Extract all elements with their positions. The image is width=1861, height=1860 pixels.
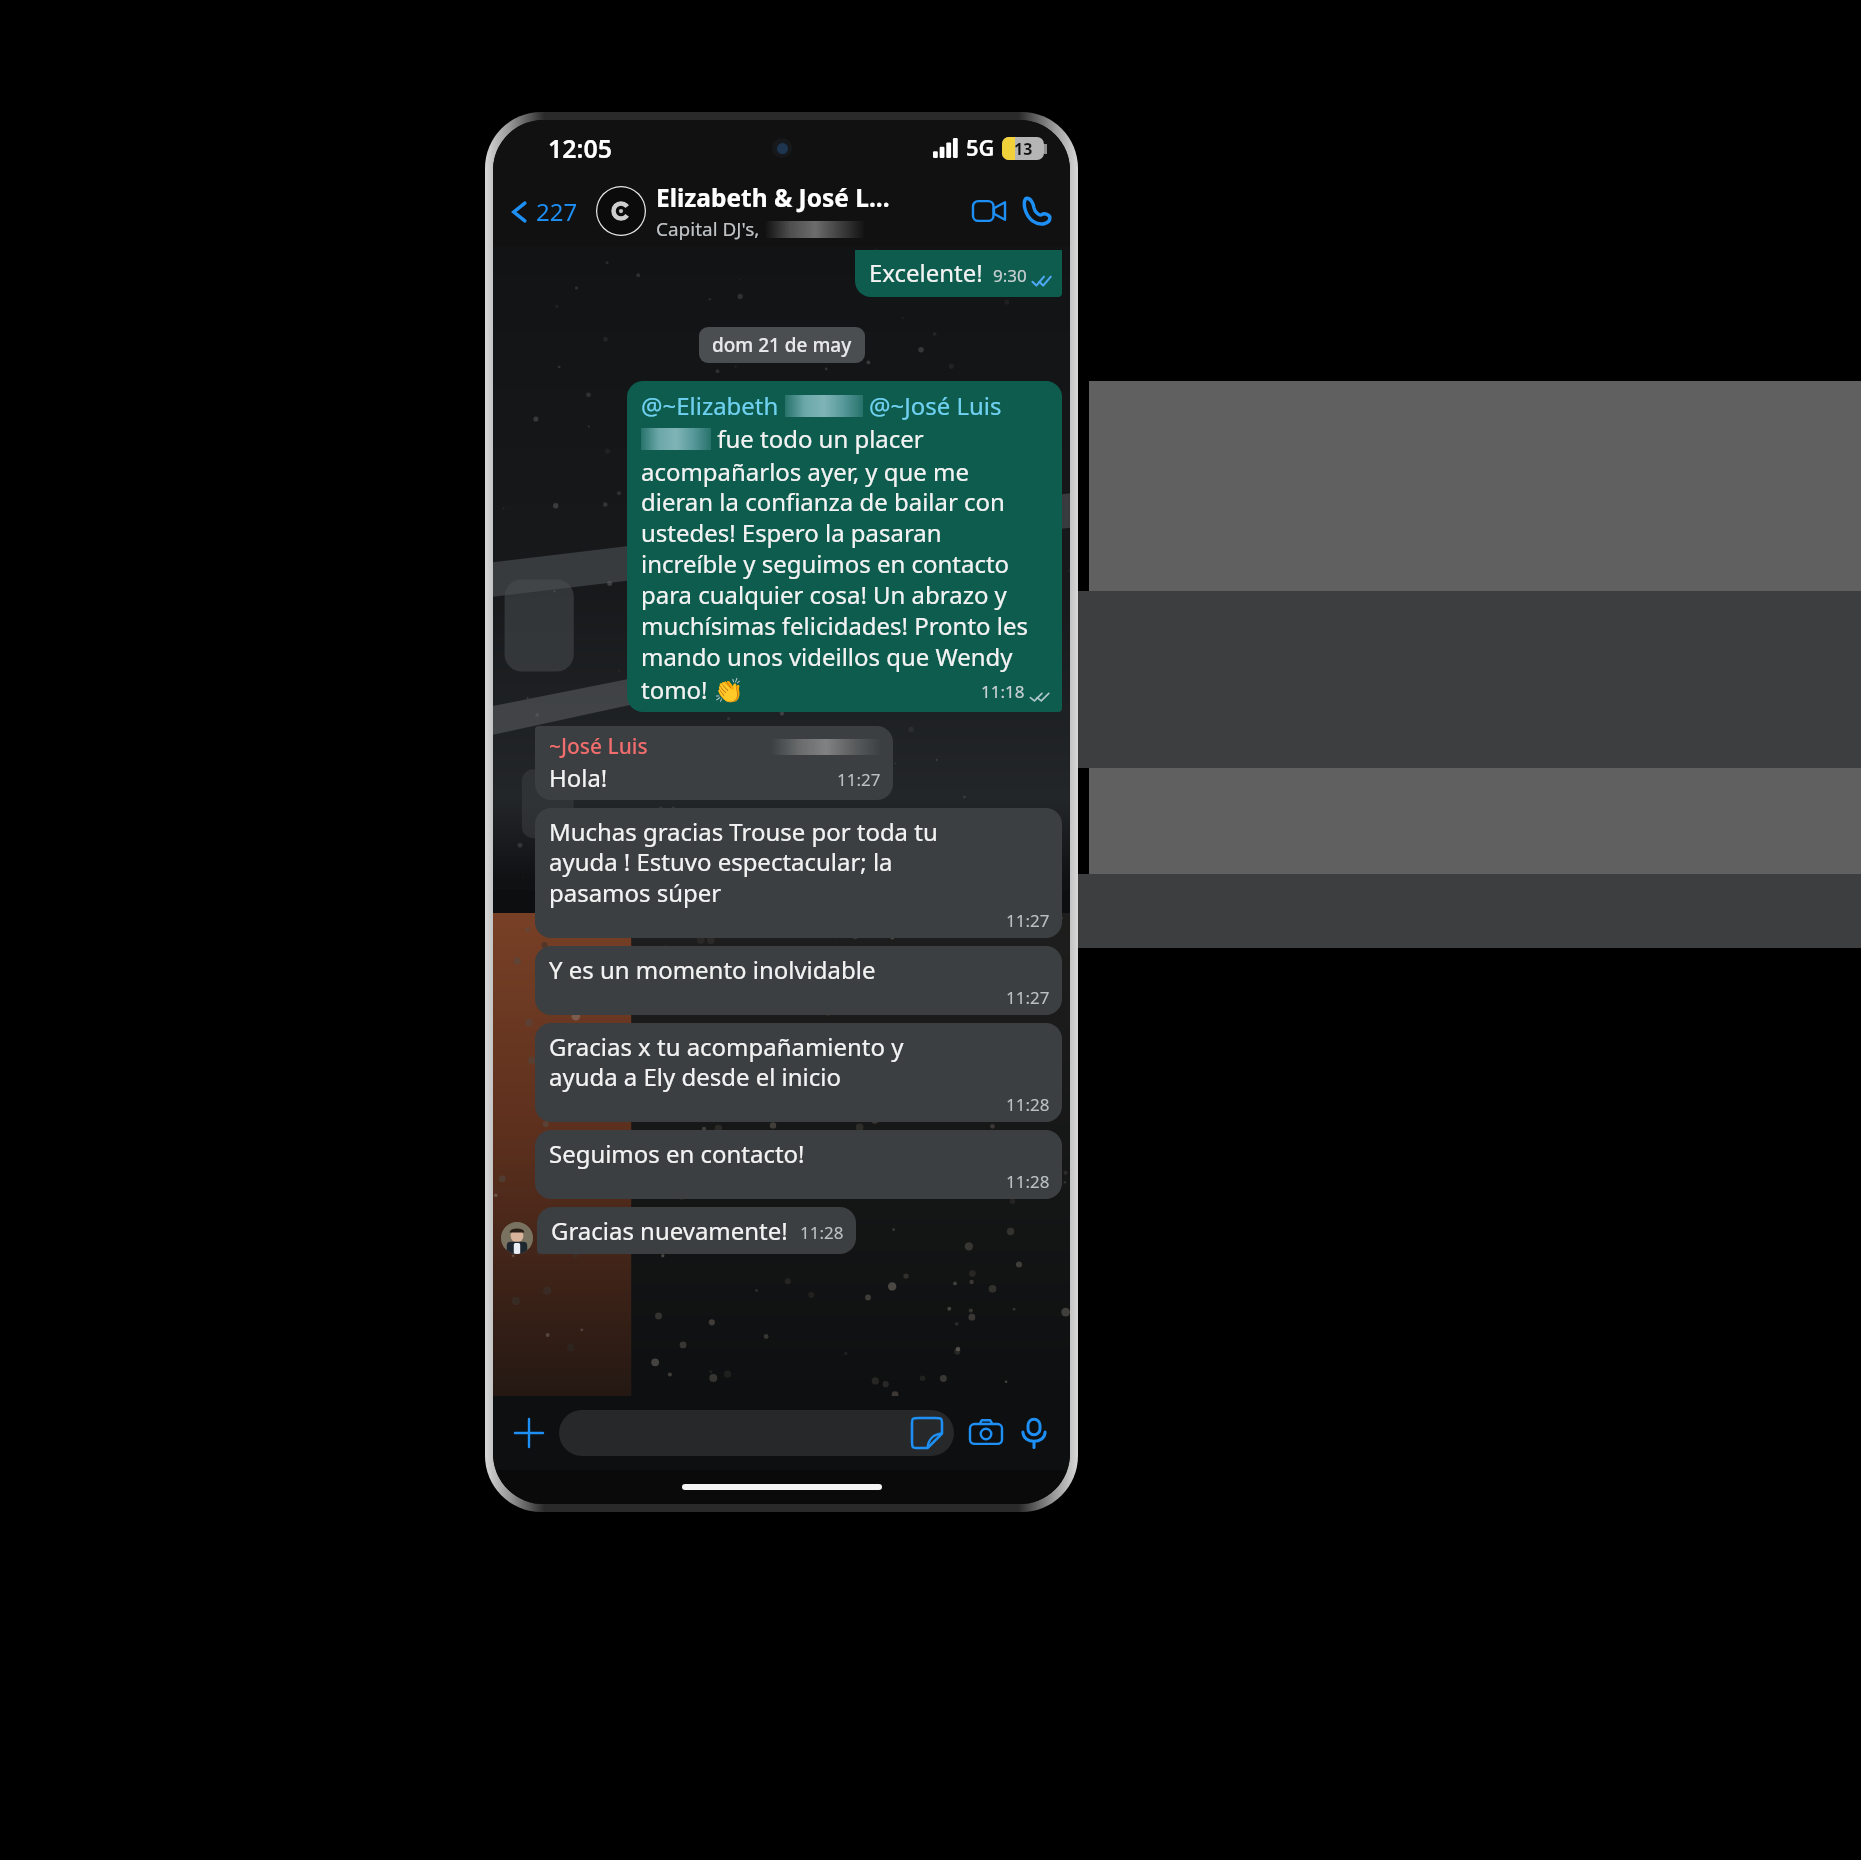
staticText: 13 xyxy=(1014,138,1033,160)
staticText: Capital DJ's, xyxy=(656,216,760,242)
staticText: dom 21 de may xyxy=(712,332,852,358)
staticText: @~José Luis xyxy=(869,389,1002,422)
staticText: Hola! xyxy=(549,761,608,794)
staticText: Gracias x tu acompañamiento y ayuda a El… xyxy=(549,1030,904,1093)
staticText: 9:30 xyxy=(993,264,1027,287)
button[interactable]: Voice call xyxy=(1014,188,1060,234)
staticText: Excelente! xyxy=(869,256,983,289)
staticText: 11:18 xyxy=(981,680,1025,703)
staticText: fue todo un placer xyxy=(711,422,924,455)
staticText: 11:28 xyxy=(800,1221,844,1244)
button[interactable]: Stickers xyxy=(559,1410,954,1456)
staticText: Elizabeth & José L... xyxy=(656,181,890,214)
button[interactable]: Gracias x tu acompañamiento y ayuda a El… xyxy=(535,1023,1062,1122)
button[interactable]: Muchas gracias Trouse por toda tu ayuda … xyxy=(535,808,1062,938)
button[interactable]: @~Elizabeth xyxy=(627,381,1062,712)
staticText: 11:28 xyxy=(1006,1170,1050,1193)
staticText: Gracias nuevamente! xyxy=(551,1214,788,1247)
button[interactable]: Gracias nuevamente! xyxy=(537,1207,856,1254)
button[interactable]: Video call xyxy=(966,188,1012,234)
button[interactable]: Excelente! xyxy=(855,250,1062,297)
staticText: acompañarlos ayer, y que me dieran la co… xyxy=(641,455,1028,673)
staticText: 11:28 xyxy=(1006,1093,1050,1116)
staticText: @~Elizabeth xyxy=(641,389,779,422)
other: Stickers xyxy=(912,1418,942,1448)
other: Sender avatar xyxy=(501,1222,533,1254)
staticText: 11:27 xyxy=(1006,909,1050,932)
staticText: 5G xyxy=(966,133,995,163)
staticText: Seguimos en contacto! xyxy=(549,1137,805,1170)
staticText: tomo! 👏 xyxy=(641,673,744,706)
staticText: 12:05 xyxy=(548,131,612,165)
button[interactable]: Attach xyxy=(507,1411,551,1455)
button[interactable]: 227 xyxy=(503,189,584,234)
staticText: 227 xyxy=(536,195,578,228)
button[interactable]: ~José Luis xyxy=(535,726,893,800)
staticText: Y es un momento inolvidable xyxy=(549,953,876,986)
button[interactable]: Camera xyxy=(964,1411,1008,1455)
button[interactable]: Seguimos en contacto! xyxy=(535,1130,1062,1199)
button[interactable]: Voice message xyxy=(1012,1411,1056,1455)
staticText: ~José Luis xyxy=(549,732,648,761)
staticText: 11:27 xyxy=(1006,986,1050,1009)
button[interactable]: Group avatar xyxy=(596,186,646,236)
button[interactable]: Y es un momento inolvidable xyxy=(535,946,1062,1015)
staticText: 11:27 xyxy=(837,768,881,791)
staticText: Muchas gracias Trouse por toda tu ayuda … xyxy=(549,815,938,909)
